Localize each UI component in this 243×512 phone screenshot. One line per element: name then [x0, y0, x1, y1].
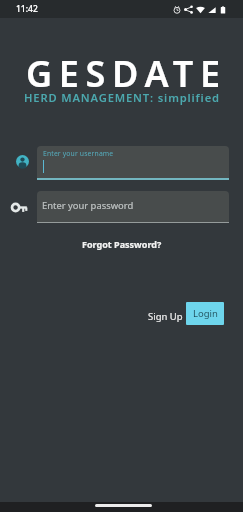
- staticText: Sign Up: [148, 310, 183, 323]
- button[interactable]: Login: [186, 302, 224, 325]
- staticText: 11:42: [16, 3, 38, 15]
- staticText: Forgot Password?: [82, 238, 162, 250]
- staticText: Enter your username: [43, 149, 114, 158]
- button[interactable]: Forgot Password?: [76, 234, 168, 254]
- other: Username: [16, 155, 29, 168]
- staticText: Login: [193, 307, 218, 320]
- staticText: HERD MANAGEMENT: simplified: [24, 90, 220, 105]
- other: Password: [11, 199, 28, 216]
- button[interactable]: Enter your username: [37, 146, 229, 179]
- button[interactable]: Sign Up: [141, 304, 190, 329]
- button[interactable]: Enter your password: [37, 191, 229, 222]
- staticText: GESDATE: [26, 49, 227, 98]
- staticText: Enter your password: [42, 199, 134, 212]
